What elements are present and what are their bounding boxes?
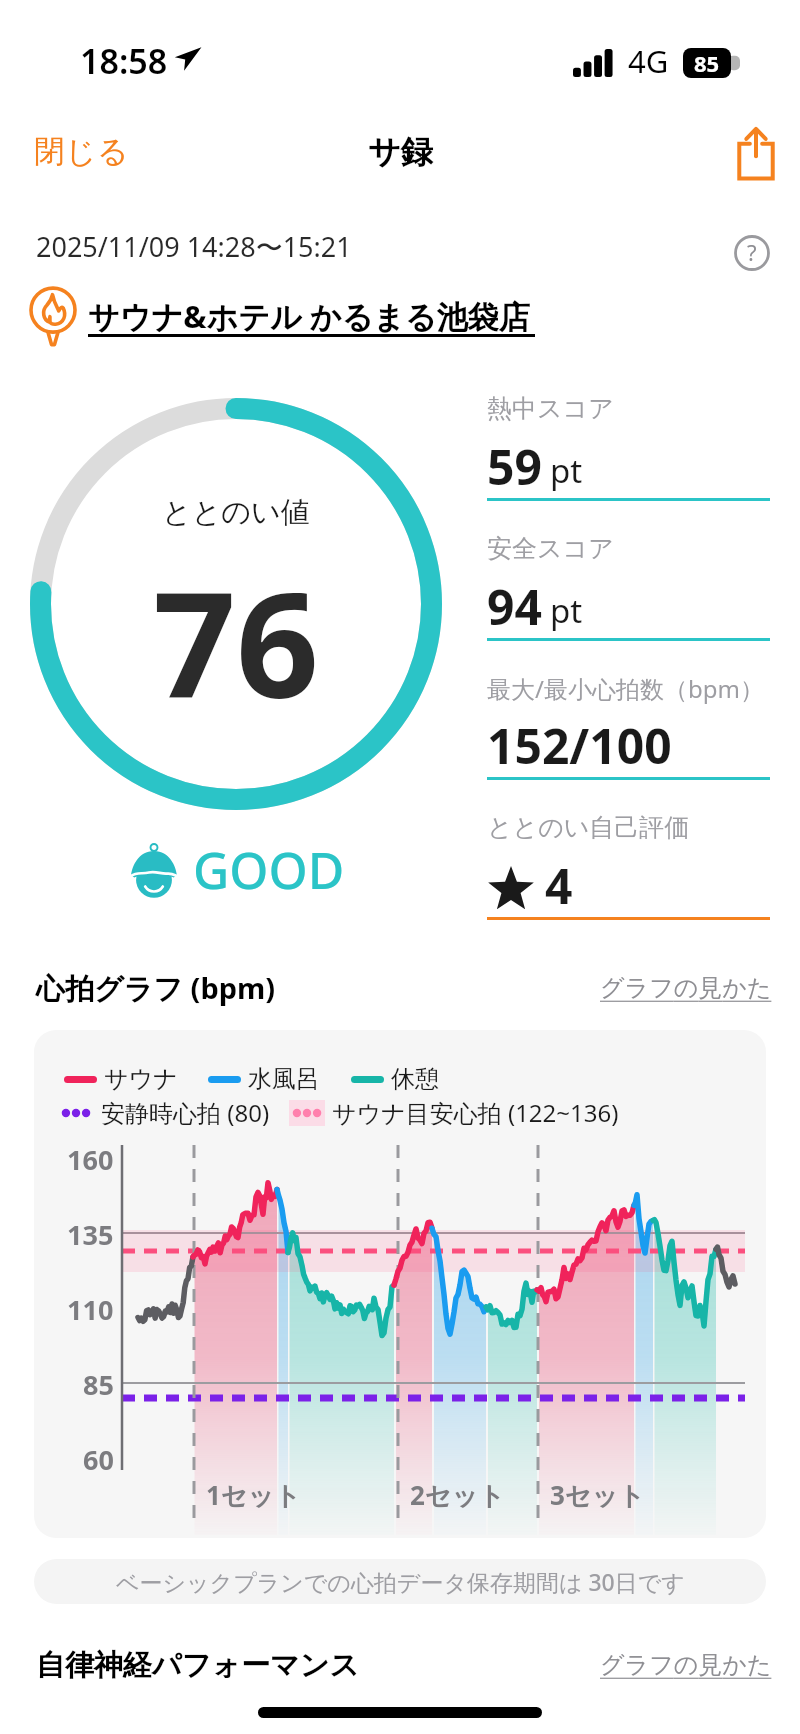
staticText: グラフの見かた	[600, 973, 772, 1003]
staticText: 152/100	[487, 713, 672, 778]
staticText: 水風呂	[248, 1064, 320, 1094]
button[interactable]: Share	[712, 122, 800, 184]
staticText: サウナ目安心拍 (122~136)	[332, 1096, 619, 1129]
staticText: 安全スコア	[487, 533, 614, 564]
staticText: 3セット	[550, 1477, 645, 1513]
staticText: pt	[550, 588, 583, 633]
staticText: 135	[67, 1216, 114, 1253]
staticText: 4G	[628, 40, 669, 82]
staticText: 2025/11/09 14:28〜15:21	[36, 228, 352, 265]
staticText: 自律神経パフォーマンス	[36, 1647, 360, 1684]
staticText: 76	[153, 543, 319, 740]
staticText: 18:58	[80, 38, 168, 84]
staticText: ととのい自己評価	[487, 812, 690, 843]
staticText: 休憩	[391, 1064, 439, 1094]
staticText: サウナ	[104, 1064, 178, 1094]
staticText: 心拍グラフ (bpm)	[36, 968, 276, 1008]
staticText: 最大/最小心拍数（bpm）	[487, 672, 764, 705]
staticText: ととのい値	[162, 494, 310, 531]
staticText: 85	[83, 1366, 114, 1403]
button[interactable]: 閉じる	[0, 122, 163, 181]
staticText: 94	[487, 574, 542, 639]
staticText: グラフの見かた	[600, 1650, 772, 1680]
staticText: 閉じる	[34, 132, 129, 171]
button[interactable]: Help	[734, 235, 770, 271]
staticText: 1セット	[206, 1477, 301, 1513]
staticText: 熱中スコア	[487, 393, 614, 424]
staticText: 4	[545, 853, 573, 918]
staticText: 59	[487, 434, 542, 499]
staticText: 110	[67, 1291, 114, 1328]
staticText: 160	[67, 1141, 114, 1178]
staticText: 60	[83, 1441, 114, 1478]
staticText: ベーシックプランでの心拍データ保存期間は 30日です	[116, 1566, 685, 1597]
staticText: 85	[694, 48, 720, 78]
staticText: ?	[747, 237, 757, 267]
staticText: pt	[550, 448, 583, 493]
button[interactable]: グラフの見かた	[598, 969, 774, 1007]
button[interactable]: サウナ&ホテル かるまる池袋店	[0, 285, 555, 349]
staticText: 安静時心拍 (80)	[101, 1096, 270, 1129]
staticText: GOOD	[193, 836, 345, 904]
staticText: サウナ&ホテル かるまる池袋店	[88, 295, 530, 337]
button[interactable]: グラフの見かた	[598, 1646, 774, 1684]
staticText: 2セット	[410, 1477, 505, 1513]
staticText: サ録	[368, 132, 433, 172]
